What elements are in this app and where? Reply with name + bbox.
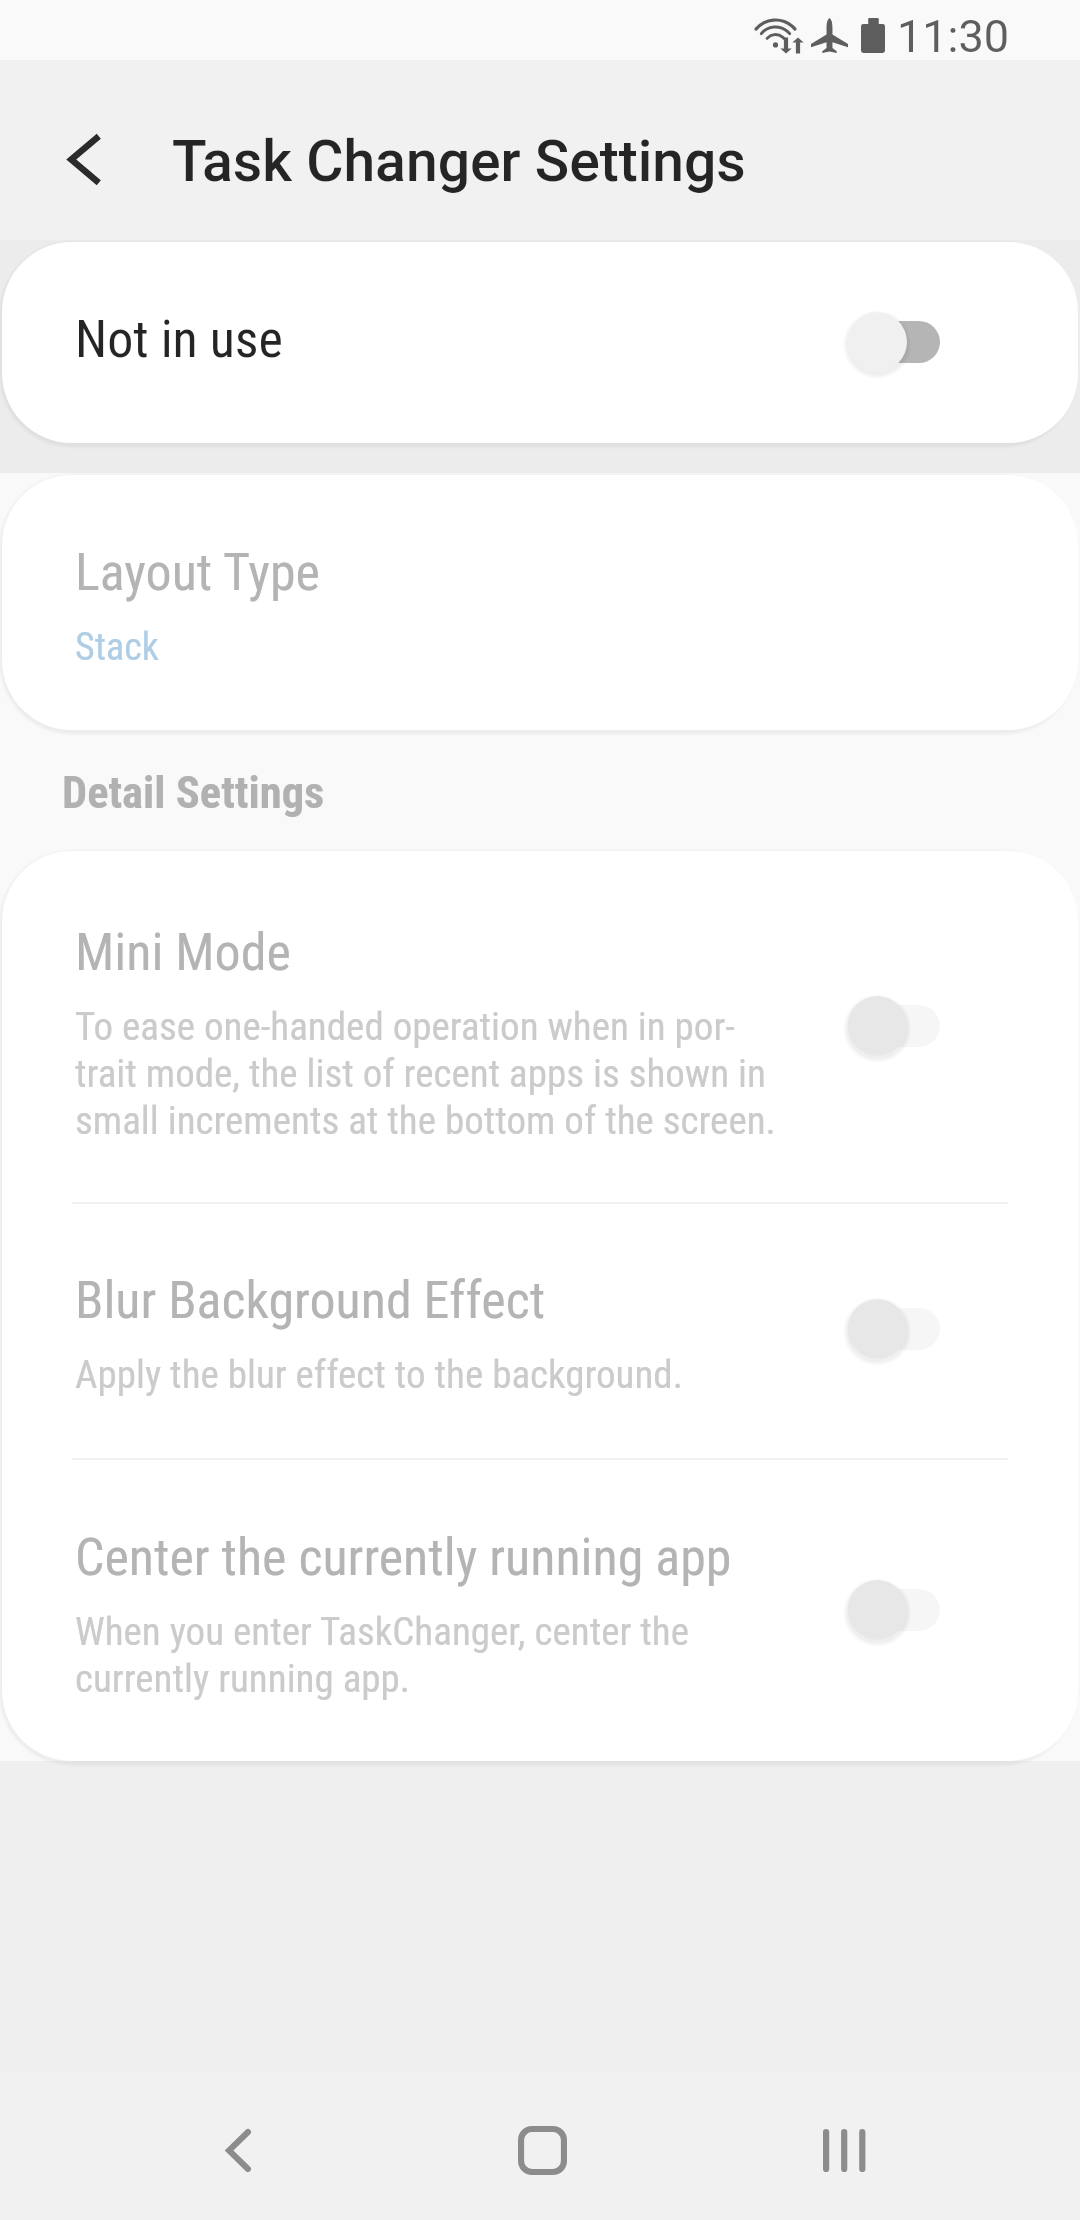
- staticText: Layout Type: [75, 542, 320, 603]
- button[interactable]: Home: [452, 2084, 632, 2217]
- button[interactable]: Toggle: [838, 986, 958, 1066]
- staticText: Blur Background Effect: [75, 1270, 546, 1331]
- staticText: Stack: [75, 625, 159, 670]
- button[interactable]: Not in use: [2, 242, 1078, 443]
- button[interactable]: Back: [148, 2084, 328, 2217]
- button[interactable]: Toggle: [838, 302, 958, 382]
- staticText: When you enter TaskChanger, center the c…: [75, 1609, 689, 1701]
- button[interactable]: Blur Background Effect: [2, 1202, 1078, 1458]
- staticText: Mini Mode: [75, 922, 291, 983]
- staticText: To ease one-handed operation when in por…: [75, 1004, 776, 1143]
- staticText: Apply the blur effect to the background.: [75, 1352, 683, 1398]
- button[interactable]: Mini Mode: [2, 851, 1078, 1202]
- staticText: 11:30: [897, 10, 1010, 63]
- button[interactable]: Back: [35, 109, 135, 209]
- button[interactable]: Toggle: [838, 1570, 958, 1650]
- staticText: Task Changer Settings: [172, 128, 746, 195]
- button[interactable]: Layout Type: [2, 475, 1078, 730]
- staticText: Center the currently running app: [75, 1527, 732, 1588]
- staticText: Not in use: [75, 309, 283, 370]
- button[interactable]: Center the currently running app: [2, 1458, 1078, 1761]
- button[interactable]: Recent apps: [754, 2084, 934, 2217]
- staticText: Detail Settings: [62, 767, 325, 819]
- button[interactable]: Toggle: [838, 1289, 958, 1369]
